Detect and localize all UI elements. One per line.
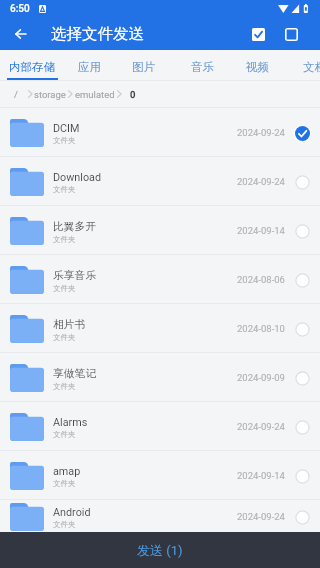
- staticText: 2024-09-24: [237, 421, 285, 432]
- staticText: amap: [53, 465, 81, 478]
- staticText: storage: [34, 89, 66, 100]
- staticText: 2024-08-06: [237, 274, 285, 285]
- button[interactable]: Deselect all: [277, 20, 305, 48]
- button[interactable]: Not selected: [290, 504, 314, 528]
- staticText: 0: [130, 89, 136, 100]
- button[interactable]: 发送 (1): [0, 532, 320, 568]
- staticText: 2024-09-24: [237, 511, 285, 522]
- button[interactable]: 文档: [303, 54, 320, 80]
- staticText: 文件夹: [53, 479, 76, 488]
- button[interactable]: 图片: [129, 54, 157, 80]
- button[interactable]: Not selected: [290, 267, 314, 291]
- staticText: 内部存储: [9, 60, 55, 74]
- button[interactable]: emulated: [75, 83, 115, 105]
- staticText: 6:50: [10, 3, 30, 15]
- button[interactable]: Not selected: [290, 463, 314, 487]
- button[interactable]: 乐享音乐: [0, 255, 320, 303]
- staticText: 2024-08-10: [237, 323, 285, 334]
- button[interactable]: Not selected: [290, 316, 314, 340]
- staticText: emulated: [75, 89, 115, 100]
- staticText: 2024-09-14: [237, 470, 285, 481]
- button[interactable]: Download: [0, 157, 320, 205]
- staticText: 2024-09-09: [237, 372, 285, 383]
- staticText: 文件夹: [53, 136, 76, 145]
- button[interactable]: Not selected: [290, 218, 314, 242]
- button[interactable]: amap: [0, 451, 320, 499]
- staticText: 相片书: [53, 318, 86, 332]
- staticText: 视频: [246, 60, 269, 74]
- staticText: 2024-09-24: [237, 127, 285, 138]
- staticText: 文件夹: [53, 382, 76, 391]
- button[interactable]: storage: [34, 83, 66, 105]
- staticText: 选择文件发送: [51, 24, 144, 44]
- button[interactable]: Not selected: [290, 414, 314, 438]
- staticText: /: [14, 89, 18, 100]
- staticText: 2024-09-14: [237, 225, 285, 236]
- button[interactable]: /: [14, 83, 18, 105]
- button[interactable]: Select all: [244, 20, 272, 48]
- staticText: Download: [53, 171, 102, 184]
- staticText: Android: [53, 506, 91, 519]
- button[interactable]: 0: [130, 83, 136, 105]
- button[interactable]: Selected: [290, 120, 314, 144]
- button[interactable]: 比翼多开: [0, 206, 320, 254]
- button[interactable]: 享做笔记: [0, 353, 320, 401]
- button[interactable]: 相片书: [0, 304, 320, 352]
- button[interactable]: Not selected: [290, 365, 314, 389]
- staticText: 发送 (1): [137, 542, 183, 558]
- staticText: 比翼多开: [53, 220, 97, 234]
- staticText: 文件夹: [53, 430, 76, 439]
- staticText: 文件夹: [53, 185, 76, 194]
- button[interactable]: DCIM: [0, 108, 320, 156]
- staticText: 应用: [78, 60, 101, 74]
- staticText: 2024-09-24: [237, 176, 285, 187]
- staticText: 享做笔记: [53, 367, 97, 381]
- staticText: 文件夹: [53, 235, 76, 244]
- staticText: 文件夹: [53, 333, 76, 342]
- staticText: 乐享音乐: [53, 269, 97, 283]
- button[interactable]: Back: [0, 17, 40, 50]
- staticText: DCIM: [53, 122, 80, 135]
- staticText: 文件夹: [53, 284, 76, 293]
- staticText: 文档: [303, 60, 320, 74]
- staticText: 图片: [132, 60, 155, 74]
- button[interactable]: Not selected: [290, 169, 314, 193]
- button[interactable]: 音乐: [188, 54, 216, 80]
- staticText: Alarms: [53, 416, 88, 429]
- button[interactable]: Android: [0, 500, 320, 532]
- staticText: 文件夹: [53, 520, 76, 529]
- button[interactable]: Alarms: [0, 402, 320, 450]
- staticText: 音乐: [191, 60, 214, 74]
- button[interactable]: 视频: [243, 54, 271, 80]
- button[interactable]: 应用: [75, 54, 103, 80]
- button[interactable]: 内部存储: [7, 54, 57, 80]
